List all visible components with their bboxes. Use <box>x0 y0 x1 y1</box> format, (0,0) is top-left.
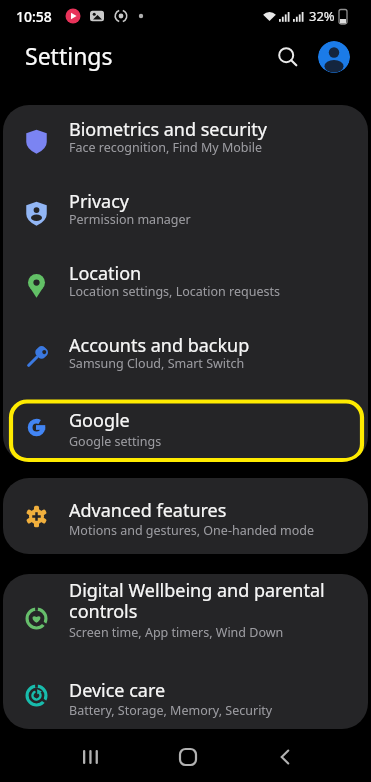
staticText: Battery, Storage, Memory, Security <box>69 702 273 719</box>
button[interactable] <box>318 41 350 73</box>
staticText: Device care <box>69 678 166 703</box>
staticText: Google settings <box>69 433 162 450</box>
staticText: Advanced features <box>69 498 227 523</box>
button[interactable] <box>269 38 307 76</box>
button[interactable]: Google <box>3 393 368 462</box>
staticText: Screen time, App timers, Wind Down <box>69 624 284 641</box>
button[interactable]: Device care <box>3 662 368 729</box>
button[interactable]: Digital Wellbeing and parental controls <box>3 574 368 662</box>
button[interactable]: Biometrics and security <box>3 105 368 177</box>
staticText: Google <box>69 408 130 433</box>
staticText: Samsung Cloud, Smart Switch <box>69 355 245 372</box>
staticText: Privacy <box>69 189 130 214</box>
staticText: Face recognition, Find My Mobile <box>69 139 263 156</box>
staticText: Settings <box>25 40 113 71</box>
staticText: Location settings, Location requests <box>69 283 281 300</box>
staticText: Permission manager <box>69 211 191 228</box>
staticText: Accounts and backup <box>69 333 250 358</box>
staticText: 10:58 <box>16 7 52 26</box>
staticText: 32% <box>309 7 335 25</box>
staticText: Digital Wellbeing and parental controls <box>69 578 325 624</box>
button[interactable]: Advanced features <box>3 478 368 554</box>
button[interactable] <box>267 739 303 775</box>
staticText: Location <box>69 261 142 286</box>
button[interactable]: Accounts and backup <box>3 321 368 393</box>
button[interactable] <box>73 739 109 775</box>
staticText: Biometrics and security <box>69 117 267 142</box>
staticText: Motions and gestures, One-handed mode <box>69 522 315 539</box>
button[interactable]: Privacy <box>3 177 368 249</box>
button[interactable] <box>170 739 206 775</box>
button[interactable]: Location <box>3 249 368 321</box>
